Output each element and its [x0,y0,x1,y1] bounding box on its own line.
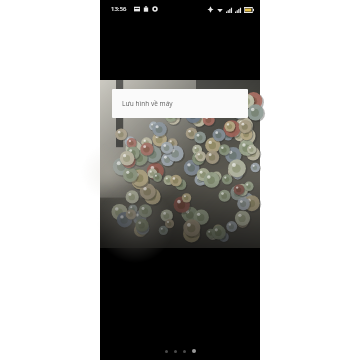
button[interactable]: Lưu hình về máy [112,89,248,118]
staticText: Lưu hình về máy [122,99,173,108]
button[interactable] [165,350,168,353]
button[interactable] [174,350,177,353]
button[interactable] [192,349,196,353]
staticText: 13:56 [111,5,127,13]
button[interactable] [183,350,186,353]
